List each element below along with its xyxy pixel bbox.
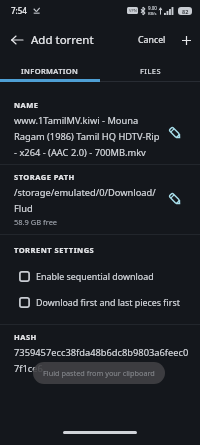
staticText: 7:54	[11, 5, 27, 16]
button[interactable]: Cancel	[134, 30, 170, 50]
staticText: 82	[182, 8, 189, 15]
button[interactable]: FILES	[100, 60, 200, 82]
staticText: Download first and last pieces first	[36, 296, 180, 308]
staticText: VPN	[129, 8, 137, 13]
button[interactable]: INFORMATION	[0, 60, 100, 82]
button[interactable]: Edit	[165, 123, 185, 143]
staticText: Add torrent	[31, 32, 94, 48]
staticText: NAME	[14, 100, 39, 110]
staticText: 9.00	[148, 5, 157, 11]
button[interactable]: Add	[175, 29, 197, 51]
staticText: INFORMATION	[21, 66, 79, 76]
button[interactable]: Navigate up	[6, 29, 28, 51]
staticText: Cancel	[138, 34, 166, 46]
button[interactable]: Enable sequential download	[14, 270, 200, 282]
staticText: 58.9 GB free	[14, 217, 58, 227]
staticText: FILES	[140, 66, 161, 76]
staticText: TORRENT SETTINGS	[14, 245, 95, 255]
staticText: STORAGE PATH	[14, 172, 75, 182]
staticText: KB/s	[148, 11, 157, 16]
staticText: www.1TamilMV.kiwi - Mouna Ragam (1986) T…	[14, 114, 161, 158]
staticText: /storage/emulated/0/Download/Flud	[14, 186, 166, 214]
staticText: HASH	[14, 332, 37, 342]
button[interactable]: Edit	[165, 189, 185, 209]
staticText: 7359457ecc38fda48b6dc8b9803a6feec07f1ce6	[14, 346, 189, 374]
staticText: Enable sequential download	[36, 270, 154, 282]
staticText: Fluid pasted from your clipboard	[43, 368, 155, 378]
button[interactable]: Download first and last pieces first	[14, 296, 200, 308]
